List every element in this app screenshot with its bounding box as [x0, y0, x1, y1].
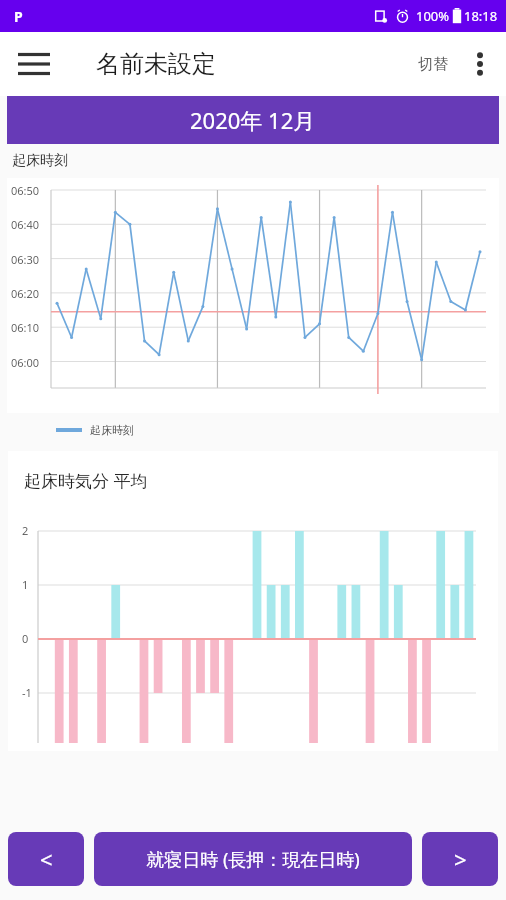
staticText: 1	[22, 577, 29, 592]
staticText: 名前未設定	[96, 49, 216, 79]
staticText: -1	[22, 685, 32, 700]
staticText: 06:40	[11, 217, 40, 232]
button[interactable]: 切替	[408, 43, 458, 86]
staticText: <	[40, 844, 53, 874]
staticText: 就寝日時 (長押：現在日時)	[146, 847, 360, 872]
staticText: 起床時刻	[12, 152, 68, 170]
button[interactable]: Open navigation menu	[12, 42, 56, 86]
staticText: >	[454, 844, 467, 874]
staticText: P	[14, 7, 23, 26]
staticText: 06:50	[11, 183, 40, 198]
staticText: 06:10	[11, 320, 40, 335]
staticText: 起床時気分 平均	[24, 469, 148, 492]
staticText: 100%	[416, 7, 450, 25]
button[interactable]: 2020年 12月	[7, 96, 499, 144]
staticText: 18:18	[464, 7, 498, 25]
button[interactable]: 就寝日時 (長押：現在日時)	[94, 832, 412, 886]
staticText: 06:00	[11, 355, 40, 370]
button[interactable]: Next	[422, 832, 498, 886]
staticText: 2020年 12月	[190, 105, 316, 135]
button[interactable]: Previous	[8, 832, 84, 886]
staticText: 0	[22, 631, 29, 646]
staticText: 切替	[418, 55, 448, 74]
staticText: 2	[22, 523, 29, 538]
staticText: 06:20	[11, 286, 40, 301]
staticText: 06:30	[11, 252, 40, 267]
button[interactable]: More options	[458, 42, 502, 86]
staticText: 起床時刻	[90, 423, 134, 437]
